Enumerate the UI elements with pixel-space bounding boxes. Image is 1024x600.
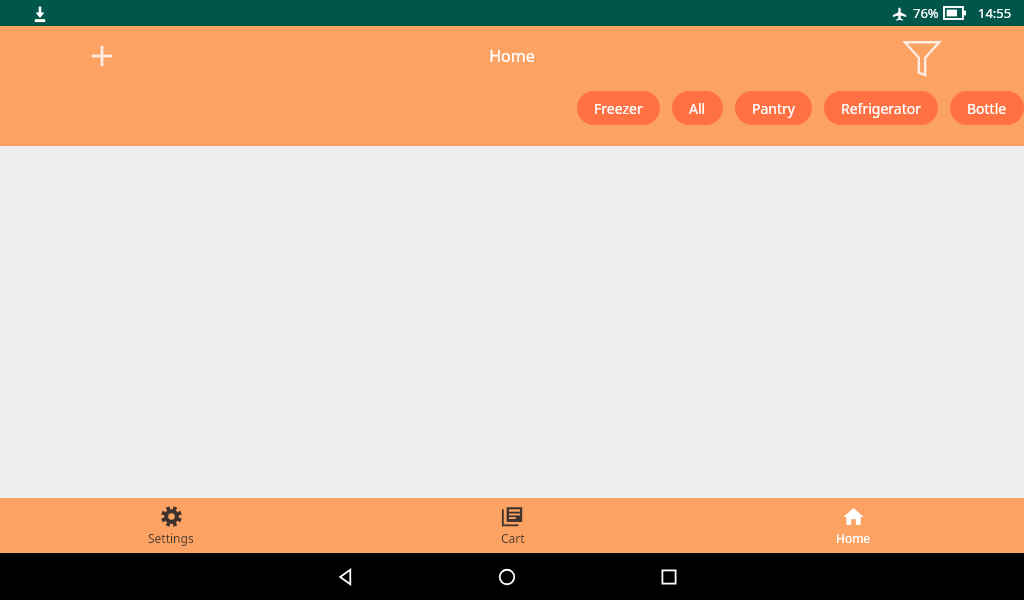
button[interactable]: Pantry xyxy=(735,91,812,125)
button[interactable]: Bottle xyxy=(950,91,1024,125)
staticText: Cart xyxy=(501,530,525,546)
staticText: Settings xyxy=(148,530,194,546)
button[interactable]: Cart xyxy=(342,498,683,553)
staticText: Home xyxy=(489,45,535,67)
button[interactable]: Home xyxy=(683,498,1024,553)
button[interactable]: Home xyxy=(496,566,518,588)
button[interactable]: Settings xyxy=(0,498,342,553)
staticText: Home xyxy=(836,530,871,546)
staticText: Pantry xyxy=(752,99,795,118)
staticText: 76% xyxy=(913,4,939,22)
button[interactable]: Refrigerator xyxy=(824,91,938,125)
staticText: Freezer xyxy=(594,99,643,118)
other: Download xyxy=(30,3,50,23)
button[interactable]: Recent apps xyxy=(658,566,680,588)
button[interactable]: All xyxy=(672,91,723,125)
staticText: Bottle xyxy=(967,99,1007,118)
staticText: Refrigerator xyxy=(841,99,921,118)
button[interactable]: Add item xyxy=(86,40,118,72)
button[interactable]: Back xyxy=(334,566,356,588)
button[interactable]: Filter xyxy=(902,37,942,77)
staticText: 14:55 xyxy=(978,4,1012,22)
staticText: All xyxy=(689,99,706,118)
button[interactable]: Freezer xyxy=(577,91,660,125)
